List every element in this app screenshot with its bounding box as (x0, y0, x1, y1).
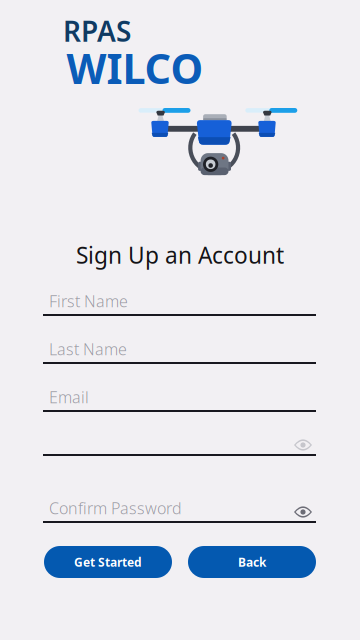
staticText: Back (238, 554, 266, 570)
button[interactable]: Show password (290, 432, 316, 450)
staticText: Last Name (49, 338, 127, 360)
button[interactable]: Back (188, 546, 316, 578)
staticText: Get Started (74, 554, 142, 570)
staticText: First Name (49, 290, 128, 312)
staticText: Confirm Password (49, 497, 182, 519)
staticText: Email (49, 386, 89, 408)
button[interactable]: Get Started (44, 546, 172, 578)
staticText: WILCO (66, 41, 203, 95)
button[interactable]: Show password (290, 499, 316, 517)
staticText: RPAS (63, 12, 131, 50)
staticText: Sign Up an Account (76, 240, 284, 270)
